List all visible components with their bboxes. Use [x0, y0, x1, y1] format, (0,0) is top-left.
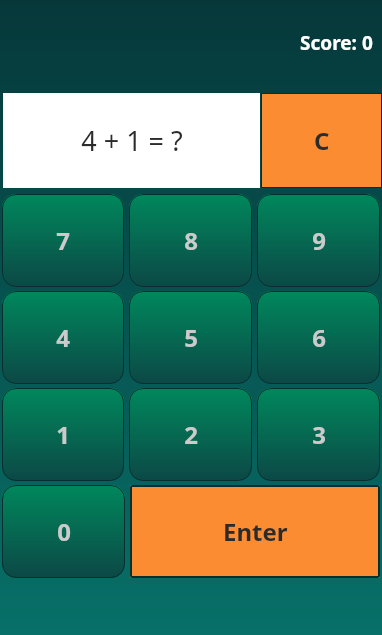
staticText: Score: 0 — [300, 30, 373, 56]
staticText: Enter — [223, 515, 288, 548]
staticText: 4 — [56, 321, 70, 354]
staticText: 5 — [184, 321, 198, 354]
button[interactable]: 8 — [129, 194, 252, 287]
button[interactable]: C — [261, 93, 382, 188]
staticText: 3 — [312, 418, 326, 451]
button[interactable]: 1 — [2, 388, 124, 481]
button[interactable]: 2 — [129, 388, 252, 481]
button[interactable]: 6 — [257, 291, 380, 384]
staticText: 8 — [184, 224, 198, 257]
button[interactable]: 3 — [257, 388, 380, 481]
button[interactable]: 5 — [129, 291, 252, 384]
staticText: 1 — [56, 418, 70, 451]
staticText: 4 + 1 = ? — [81, 122, 183, 159]
staticText: 2 — [184, 418, 198, 451]
button[interactable]: Enter — [130, 485, 380, 578]
staticText: C — [314, 124, 330, 157]
button[interactable]: 0 — [2, 485, 125, 578]
staticText: 7 — [56, 224, 70, 257]
button[interactable]: 4 — [2, 291, 124, 384]
staticText: 9 — [312, 224, 326, 257]
button[interactable]: 7 — [2, 194, 124, 287]
button[interactable]: 4 + 1 = ? — [3, 93, 260, 188]
staticText: 6 — [312, 321, 326, 354]
staticText: 0 — [57, 515, 71, 548]
button[interactable]: Score: 0 — [300, 30, 373, 56]
button[interactable]: 9 — [257, 194, 380, 287]
